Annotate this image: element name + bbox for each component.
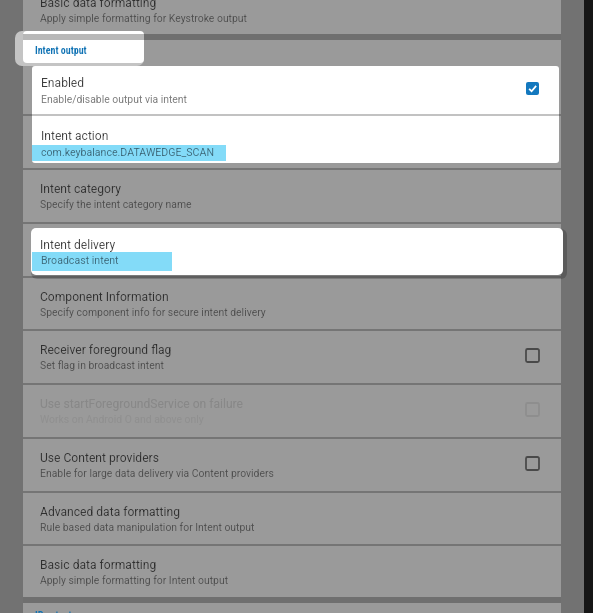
button[interactable]: Use startForegroundService on failure <box>23 383 561 437</box>
button[interactable]: Intent action <box>32 116 559 163</box>
button[interactable]: Enabled <box>32 66 559 115</box>
staticText: Intent category <box>40 182 121 196</box>
button[interactable]: Advanced data formatting <box>23 491 561 545</box>
staticText: Advanced data formatting <box>40 505 180 519</box>
staticText: Rule based data manipulation for Intent … <box>40 521 255 533</box>
staticText: Specify component info for secure intent… <box>40 306 266 318</box>
staticText: Intent delivery <box>40 238 116 252</box>
staticText: Use startForegroundService on failure <box>40 397 243 411</box>
staticText: Enable/disable output via intent <box>41 93 187 105</box>
button[interactable]: Receiver foreground flag <box>23 329 561 383</box>
staticText: Enabled <box>41 76 85 90</box>
other: Receiver foreground flag <box>526 349 539 362</box>
staticText: Intent action <box>41 129 109 143</box>
other: Use startForegroundService on failure <box>526 403 539 416</box>
staticText: Component Information <box>40 290 169 304</box>
staticText: Basic data formatting <box>40 0 157 10</box>
staticText: Use Content providers <box>40 451 159 465</box>
staticText: Works on Android O and above only <box>40 413 204 425</box>
staticText: IP output <box>35 610 72 613</box>
staticText: Receiver foreground flag <box>40 343 172 357</box>
button[interactable]: Intent category <box>23 168 561 222</box>
other: Use Content providers <box>526 457 539 470</box>
button[interactable]: Intent output <box>23 31 144 63</box>
other: Enabled checkbox <box>526 82 539 95</box>
button[interactable]: Intent delivery <box>31 228 563 275</box>
button[interactable]: Use Content providers <box>23 437 561 491</box>
staticText: Specify the intent category name <box>40 198 192 210</box>
button[interactable]: Basic data formatting <box>23 0 561 36</box>
staticText: Broadcast intent <box>41 254 119 266</box>
staticText: Apply simple formatting for Intent outpu… <box>40 574 229 586</box>
staticText: Set flag in broadcast intent <box>40 359 164 371</box>
staticText: Enable for large data delivery via Conte… <box>40 467 274 479</box>
staticText: com.keybalance.DATAWEDGE_SCAN <box>41 146 214 158</box>
button[interactable]: Component Information <box>23 276 561 330</box>
button[interactable]: Basic data formatting <box>23 544 561 598</box>
staticText: Intent output <box>35 45 87 57</box>
staticText: Basic data formatting <box>40 558 157 572</box>
staticText: Apply simple formatting for Keystroke ou… <box>40 12 247 24</box>
